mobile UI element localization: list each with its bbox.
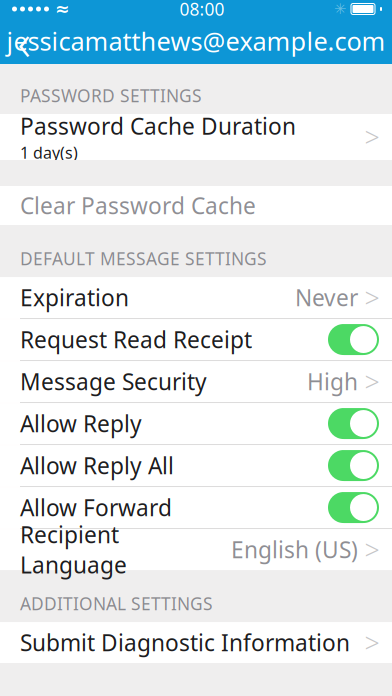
button[interactable]: Back bbox=[0, 18, 48, 64]
staticText: ✳ bbox=[334, 1, 346, 17]
staticText: 1 day(s) bbox=[20, 142, 78, 163]
staticText: > bbox=[364, 119, 379, 155]
button[interactable]: Allow Reply bbox=[0, 403, 392, 444]
staticText: > bbox=[364, 532, 379, 567]
staticText: ADDITIONAL SETTINGS bbox=[20, 592, 213, 615]
staticText: Clear Password Cache bbox=[20, 190, 256, 221]
staticText: ‹ bbox=[17, 7, 30, 75]
button[interactable]: Recipient Language bbox=[0, 529, 392, 570]
staticText: ≈ bbox=[55, 0, 70, 19]
staticText: Message Security bbox=[20, 366, 207, 397]
staticText: 08:00 bbox=[179, 0, 224, 20]
button[interactable]: Submit Diagnostic Information bbox=[0, 622, 392, 663]
staticText: PASSWORD SETTINGS bbox=[20, 84, 202, 107]
staticText: > bbox=[364, 280, 379, 315]
staticText: jessicamatthews@example.com bbox=[6, 24, 385, 58]
staticText: Expiration bbox=[20, 282, 129, 313]
staticText: Never bbox=[295, 282, 358, 313]
button[interactable]: Password Cache Duration bbox=[0, 114, 392, 160]
staticText: High bbox=[307, 366, 358, 397]
button[interactable]: Clear Password Cache bbox=[0, 186, 392, 225]
button[interactable]: Expiration bbox=[0, 277, 392, 318]
staticText: Request Read Receipt bbox=[20, 324, 252, 355]
staticText: Submit Diagnostic Information bbox=[20, 627, 350, 658]
staticText: Password Cache Duration bbox=[20, 111, 296, 141]
staticText: Recipient Language bbox=[20, 519, 127, 580]
staticText: Allow Reply bbox=[20, 408, 142, 439]
button[interactable]: Message Security bbox=[0, 361, 392, 402]
staticText: English (US) bbox=[231, 534, 358, 565]
staticText: Allow Reply All bbox=[20, 450, 174, 481]
staticText: DEFAULT MESSAGE SETTINGS bbox=[20, 247, 267, 270]
button[interactable]: Request Read Receipt bbox=[0, 319, 392, 360]
staticText: Allow Forward bbox=[20, 492, 172, 523]
button[interactable]: Allow Reply All bbox=[0, 445, 392, 486]
button[interactable]: Allow Forward bbox=[0, 487, 392, 528]
staticText: > bbox=[364, 625, 379, 660]
staticText: > bbox=[364, 364, 379, 399]
